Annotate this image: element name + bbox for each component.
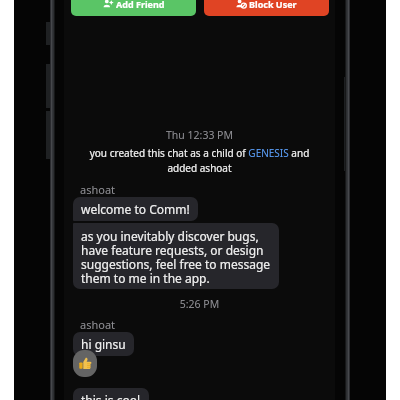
button[interactable]: this is cool [73, 388, 149, 400]
button[interactable]: Block User [204, 0, 329, 16]
staticText: Add Friend [116, 0, 165, 10]
button[interactable]: Thumbs up reaction [73, 350, 97, 377]
button[interactable]: as you inevitably discover bugs, have fe… [73, 223, 279, 289]
staticText: Thu 12:33 PM [64, 128, 335, 142]
staticText: you created this chat as a child of GENE… [76, 146, 323, 175]
staticText: 5:26 PM [64, 297, 335, 311]
staticText: ashoat [80, 317, 116, 332]
staticText: hi ginsu [81, 336, 126, 352]
button[interactable]: hi ginsu [73, 332, 134, 356]
button[interactable]: Add Friend [71, 0, 196, 16]
staticText: welcome to Comm! [81, 201, 190, 217]
staticText: ashoat [80, 182, 116, 197]
staticText: this is cool [81, 392, 141, 400]
staticText: as you inevitably discover bugs, have fe… [81, 228, 271, 287]
staticText: Block User [249, 0, 297, 10]
button[interactable]: welcome to Comm! [73, 197, 198, 221]
